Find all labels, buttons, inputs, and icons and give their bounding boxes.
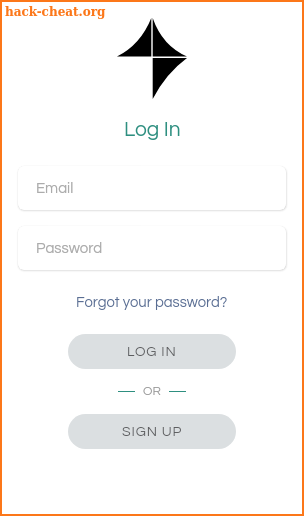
staticText: LOG IN (127, 345, 177, 359)
staticText: OR (143, 385, 161, 398)
staticText: Forgot your password? (76, 295, 228, 310)
button[interactable]: Email (18, 166, 286, 210)
button[interactable]: LOG IN (68, 334, 236, 369)
staticText: Email (36, 181, 74, 196)
staticText: hack-cheat.org (5, 5, 106, 19)
button[interactable]: SIGN UP (68, 414, 236, 449)
button[interactable]: Forgot your password? (70, 293, 234, 312)
button[interactable]: Password (18, 226, 286, 270)
staticText: Log In (124, 119, 181, 141)
staticText: SIGN UP (122, 425, 183, 439)
staticText: Password (36, 241, 103, 256)
